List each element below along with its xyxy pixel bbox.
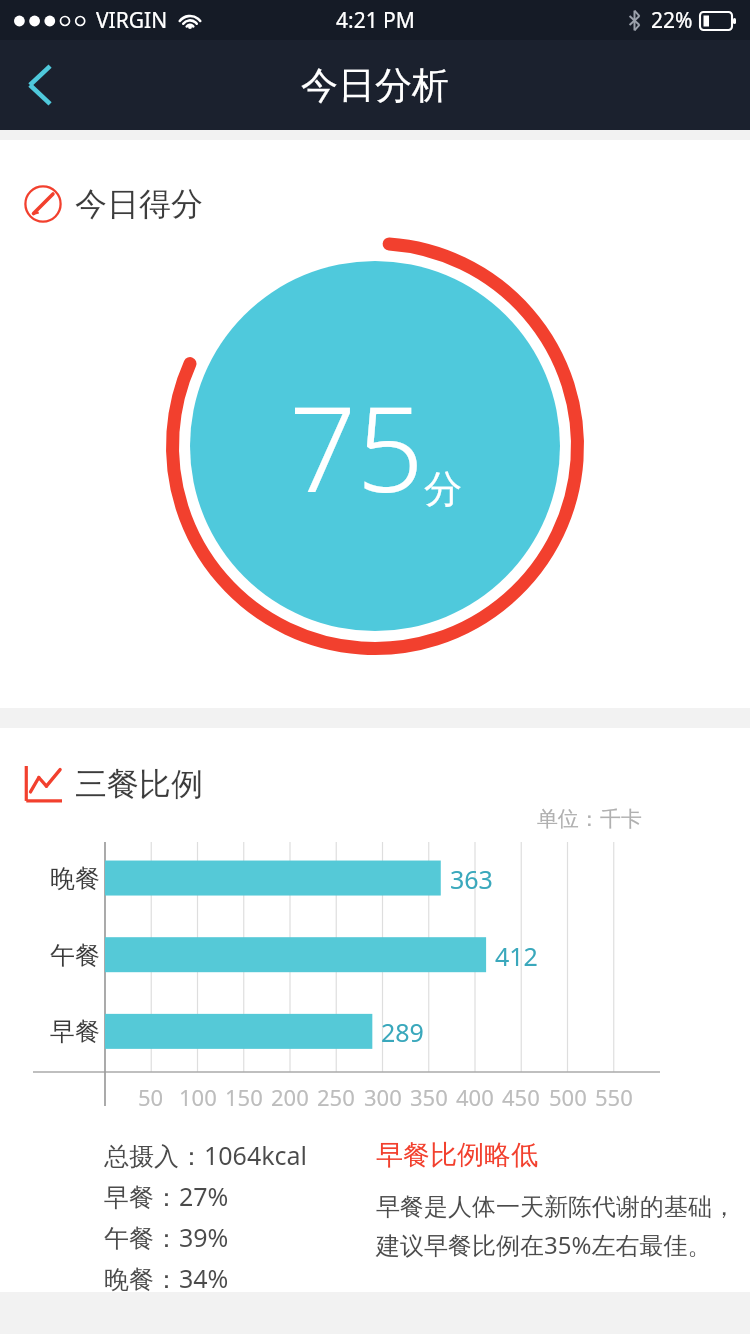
staticText: 150	[225, 1082, 263, 1112]
button[interactable]: Back	[0, 40, 80, 130]
staticText: 4:21 PM	[336, 6, 415, 35]
staticText: 500	[549, 1082, 587, 1112]
staticText: 早餐比例略低	[376, 1138, 538, 1172]
staticText: 早餐：27%	[104, 1179, 229, 1213]
staticText: 今日得分	[75, 184, 203, 224]
staticText: 200	[271, 1082, 309, 1112]
staticText: 50	[138, 1082, 164, 1112]
staticText: 三餐比例	[75, 764, 203, 804]
staticText: 363	[450, 862, 493, 894]
staticText: 300	[364, 1082, 402, 1112]
staticText: 今日分析	[301, 62, 449, 109]
staticText: 400	[456, 1082, 494, 1112]
staticText: 早餐是人体一天新陈代谢的基础，	[376, 1192, 736, 1222]
staticText: 75	[289, 366, 424, 527]
staticText: 550	[595, 1082, 633, 1112]
staticText: 22%	[651, 6, 693, 35]
staticText: 午餐	[50, 940, 100, 971]
staticText: 100	[179, 1082, 217, 1112]
staticText: 午餐：39%	[104, 1220, 229, 1254]
staticText: VIRGIN	[96, 6, 168, 35]
staticText: 250	[317, 1082, 355, 1112]
staticText: 412	[495, 939, 538, 971]
staticText: 晚餐	[50, 863, 100, 894]
staticText: 450	[502, 1082, 540, 1112]
staticText: 单位：千卡	[537, 806, 642, 832]
staticText: 总摄入：1064kcal	[104, 1138, 308, 1172]
staticText: 早餐	[50, 1016, 100, 1047]
staticText: 晚餐：34%	[104, 1261, 229, 1295]
staticText: 289	[381, 1015, 424, 1047]
staticText: 分	[424, 465, 462, 513]
staticText: 350	[410, 1082, 448, 1112]
staticText: 建议早餐比例在35%左右最佳。	[376, 1228, 712, 1261]
